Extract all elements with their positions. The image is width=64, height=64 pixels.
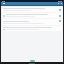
button[interactable]	[2, 7, 62, 12]
button[interactable]	[2, 13, 62, 18]
button[interactable]: More options	[60, 2, 62, 5]
button[interactable]: Search	[57, 2, 59, 5]
button[interactable]: Primary action	[30, 60, 35, 62]
button[interactable]	[2, 19, 62, 25]
button[interactable]	[2, 26, 62, 31]
button[interactable]: Navigate up	[2, 2, 5, 5]
